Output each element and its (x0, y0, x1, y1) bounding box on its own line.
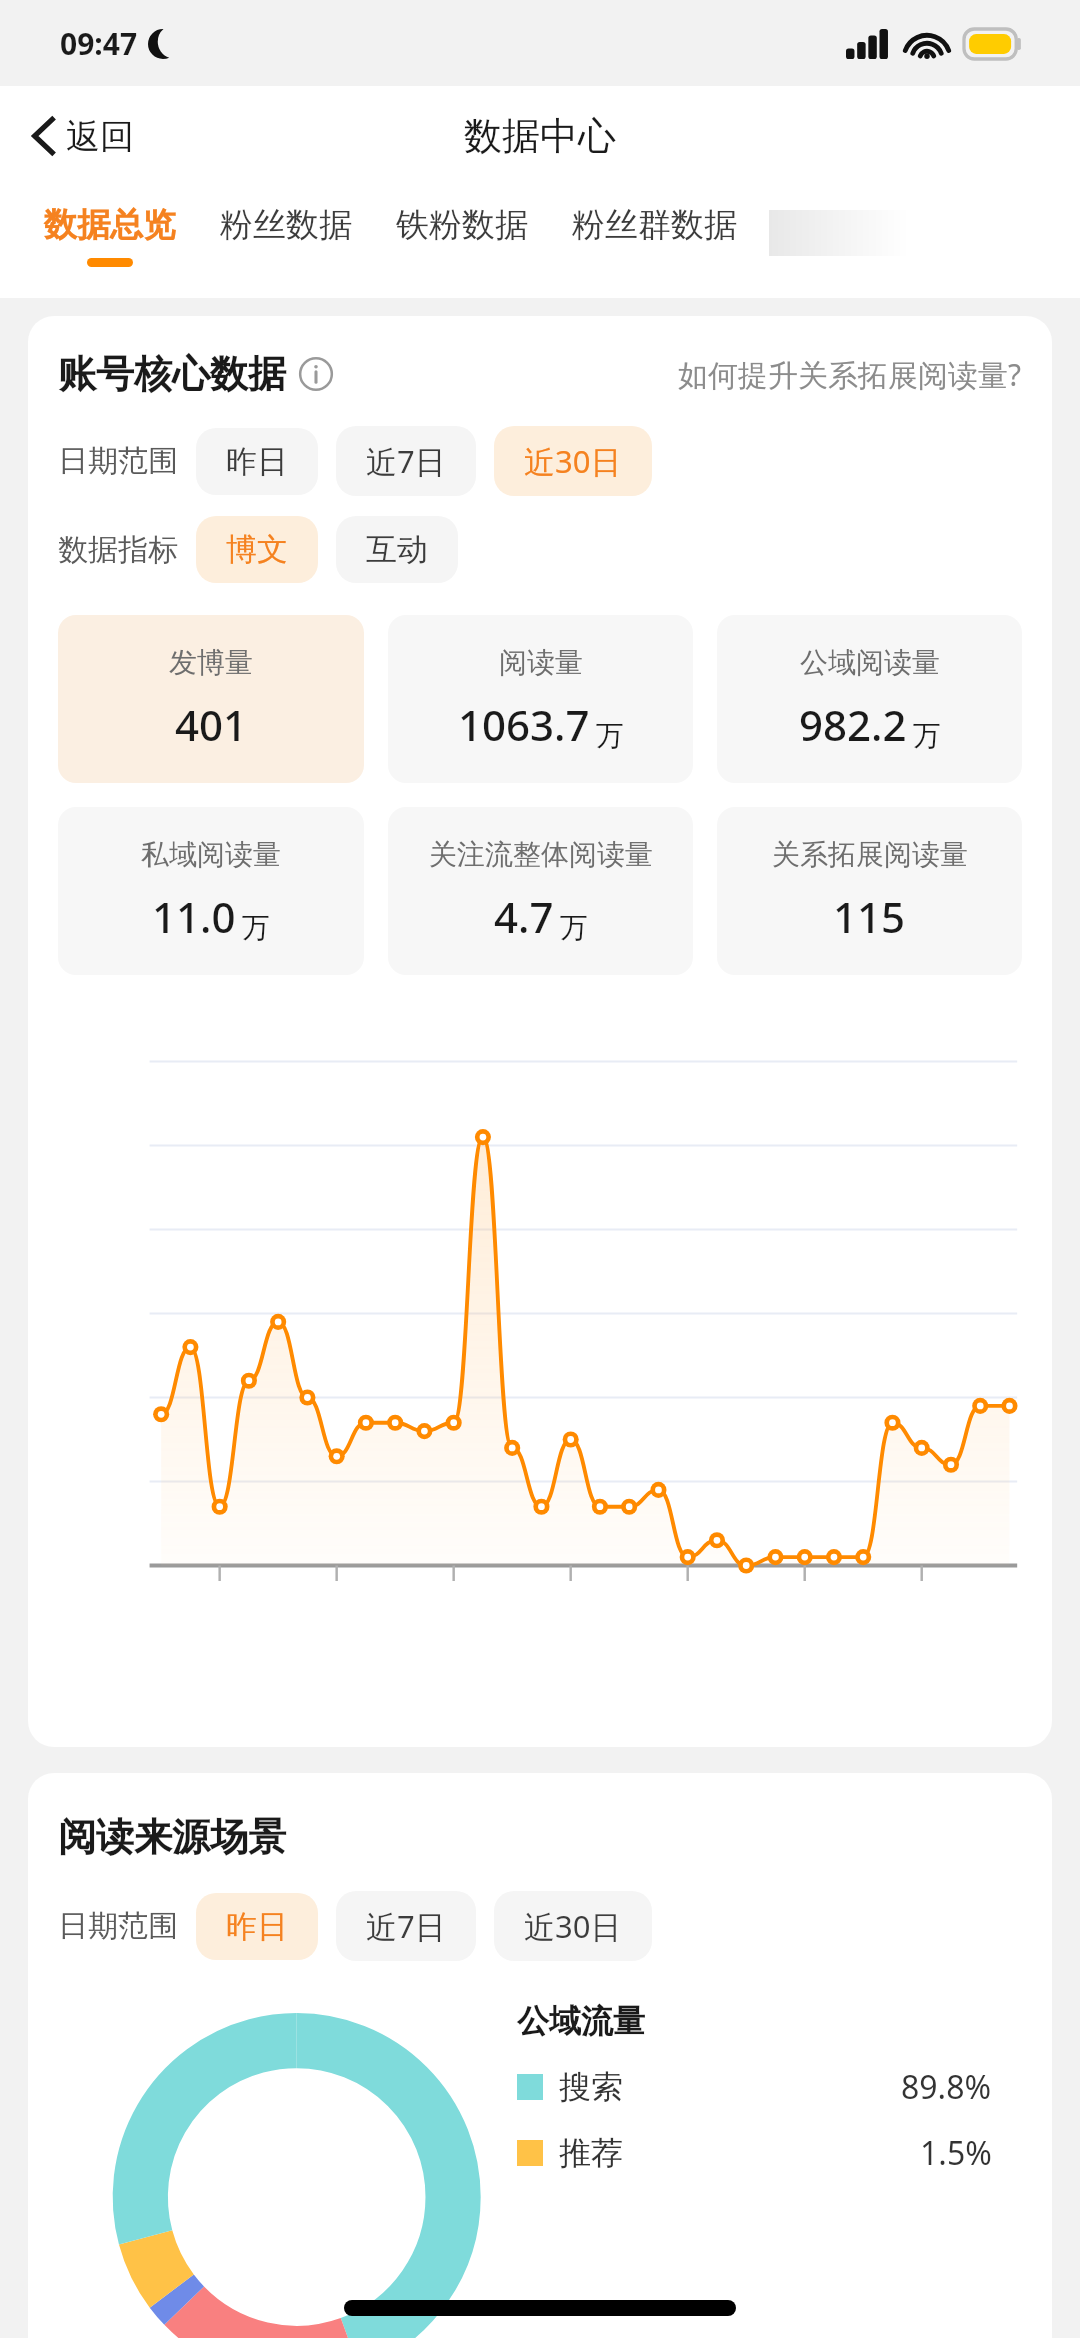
staticText: 1.5% (920, 2131, 992, 2175)
button[interactable]: 昨日 (196, 1893, 318, 1960)
button[interactable]: 粉丝数据 (198, 186, 374, 258)
button[interactable]: 粉丝群数据 (550, 186, 759, 258)
staticText: 发博量 (169, 645, 253, 680)
button[interactable]: 博文 (196, 516, 318, 583)
staticText: 日期范围 (58, 1907, 178, 1945)
staticText: 搜索 (559, 2067, 623, 2107)
staticText: 返回 (66, 115, 134, 158)
button[interactable]: 推荐 (517, 2131, 1022, 2175)
button[interactable]: 近30日 (494, 1891, 652, 1961)
staticText: 近30日 (524, 1905, 622, 1947)
staticText: 粉丝数据 (220, 204, 352, 246)
button[interactable]: 如何提升关系拓展阅读量? (678, 354, 1022, 395)
button[interactable]: 阅读量 (388, 615, 693, 783)
staticText: 近30日 (524, 440, 622, 482)
button[interactable]: 关注流整体阅读量 (388, 807, 693, 975)
staticText: 私域阅读量 (141, 837, 281, 872)
staticText: 万 (596, 718, 624, 753)
staticText: 铁粉数据 (396, 204, 528, 246)
button[interactable]: 近7日 (336, 1891, 476, 1961)
button[interactable]: 昨日 (196, 428, 318, 495)
staticText: 关系拓展阅读量 (772, 837, 968, 872)
staticText: 89.8% (901, 2065, 992, 2109)
staticText: 万 (242, 910, 270, 945)
staticText: 日期范围 (58, 442, 178, 480)
button[interactable]: 数据总览 (22, 186, 198, 267)
button[interactable]: 搜索 (517, 2065, 1022, 2109)
button[interactable]: 近7日 (336, 426, 476, 496)
button[interactable]: 互动 (336, 516, 458, 583)
staticText: 关注流整体阅读量 (429, 837, 653, 872)
button[interactable]: 铁粉数据 (374, 186, 550, 258)
staticText: 账号核心数据 (58, 350, 286, 398)
staticText: 昨日 (226, 442, 288, 481)
staticText: 数据总览 (44, 204, 176, 246)
staticText: 数据指标 (58, 531, 178, 569)
staticText: 近7日 (366, 1905, 446, 1947)
staticText: 互动 (366, 530, 428, 569)
button[interactable]: 返回 (22, 108, 144, 164)
button[interactable]: 发博量 (58, 615, 364, 783)
staticText: 公域流量 (517, 2001, 645, 2041)
staticText: 401 (175, 696, 248, 753)
staticText: 如何提升关系拓展阅读量? (678, 354, 1022, 395)
staticText: 982.2 (799, 696, 907, 753)
staticText: 公域阅读量 (800, 645, 940, 680)
staticText: 115 (833, 888, 906, 945)
button[interactable]: 公域阅读量 (717, 615, 1022, 783)
staticText: 万 (560, 910, 588, 945)
button[interactable]: 私域阅读量 (58, 807, 364, 975)
staticText: 推荐 (559, 2133, 623, 2173)
staticText: 09:47 (60, 23, 138, 64)
staticText: 万 (913, 718, 941, 753)
staticText: 阅读来源场景 (58, 1813, 286, 1861)
staticText: 昨日 (226, 1907, 288, 1946)
staticText: 11.0 (152, 888, 236, 945)
staticText: 4.7 (494, 888, 554, 945)
staticText: 1063.7 (458, 696, 590, 753)
button[interactable]: 信息说明 (298, 356, 334, 392)
button[interactable]: 关系拓展阅读量 (717, 807, 1022, 975)
staticText: 粉丝群数据 (572, 204, 737, 246)
staticText: 近7日 (366, 440, 446, 482)
button[interactable]: 近30日 (494, 426, 652, 496)
staticText: 阅读量 (499, 645, 583, 680)
staticText: 博文 (226, 530, 288, 569)
staticText: 数据中心 (464, 112, 616, 160)
